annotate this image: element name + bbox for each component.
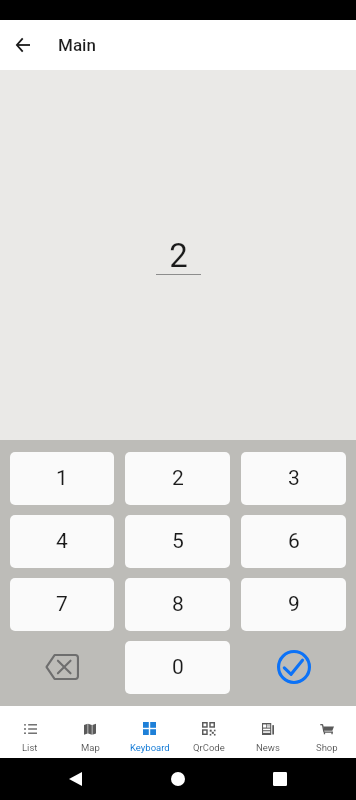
button[interactable]: Confirm [241, 641, 346, 694]
staticText: 2 [169, 236, 188, 275]
button[interactable]: Map [60, 706, 120, 758]
staticText: 6 [288, 529, 300, 554]
button[interactable]: 9 [241, 578, 346, 631]
button[interactable]: Backspace [10, 641, 114, 694]
button[interactable]: 0 [125, 641, 230, 694]
button[interactable]: Back [54, 758, 96, 800]
staticText: 3 [288, 466, 300, 491]
button[interactable]: 3 [241, 452, 346, 505]
staticText: 0 [172, 655, 184, 680]
button[interactable]: Home [157, 758, 199, 800]
button[interactable]: 5 [125, 515, 230, 568]
staticText: 7 [56, 592, 68, 617]
staticText: News [256, 742, 280, 753]
button[interactable]: QrCode [179, 706, 238, 758]
staticText: 2 [172, 466, 184, 491]
button[interactable]: Recents [259, 758, 301, 800]
staticText: Keyboard [130, 742, 170, 753]
staticText: Shop [316, 742, 338, 753]
staticText: Main [58, 35, 96, 55]
staticText: 9 [288, 592, 300, 617]
staticText: 8 [172, 592, 184, 617]
button[interactable]: 4 [10, 515, 114, 568]
staticText: 5 [172, 529, 184, 554]
button[interactable]: 6 [241, 515, 346, 568]
staticText: 1 [56, 466, 68, 491]
button[interactable]: 1 [10, 452, 114, 505]
staticText: 4 [56, 529, 68, 554]
staticText: QrCode [193, 742, 225, 753]
staticText: List [22, 742, 38, 753]
button[interactable]: News [238, 706, 297, 758]
button[interactable]: Back [0, 20, 46, 70]
button[interactable]: Shop [297, 706, 356, 758]
button[interactable]: 8 [125, 578, 230, 631]
staticText: Map [81, 742, 100, 753]
button[interactable]: 2 [125, 452, 230, 505]
button[interactable]: Keyboard [120, 706, 179, 758]
button[interactable]: List [0, 706, 60, 758]
button[interactable]: 7 [10, 578, 114, 631]
